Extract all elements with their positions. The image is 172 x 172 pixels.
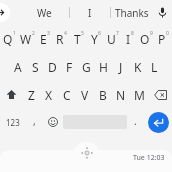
button[interactable]: , — [26, 108, 43, 136]
staticText: X — [45, 87, 53, 103]
staticText: G — [82, 59, 91, 75]
staticText: C — [63, 87, 71, 103]
button[interactable]: We — [19, 0, 69, 25]
staticText: T — [74, 31, 81, 47]
staticText: A — [14, 59, 22, 75]
button[interactable]: P — [155, 25, 172, 53]
button[interactable]: J — [112, 53, 129, 81]
button[interactable]: I — [70, 0, 110, 25]
staticText: Z — [28, 87, 35, 103]
staticText: N — [116, 87, 126, 103]
staticText: 1 — [13, 30, 16, 37]
staticText: D — [48, 59, 57, 75]
staticText: . — [134, 114, 137, 128]
staticText: 7 — [116, 30, 119, 37]
staticText: 123 — [6, 117, 20, 128]
button[interactable]: F — [61, 53, 78, 81]
button[interactable]: I — [121, 25, 138, 53]
button[interactable]: W — [18, 25, 36, 53]
staticText: Thanks — [115, 6, 149, 20]
staticText: E — [40, 31, 47, 47]
button[interactable]: A — [9, 53, 27, 81]
staticText: O — [140, 31, 150, 47]
staticText: P — [158, 31, 166, 47]
button[interactable]: V — [76, 81, 94, 108]
staticText: 8 — [131, 30, 134, 37]
staticText: Y — [91, 31, 98, 47]
staticText: Q — [3, 31, 13, 47]
button[interactable]: R — [53, 25, 70, 53]
staticText: Tue 12:03 — [133, 153, 165, 163]
button[interactable]: K — [129, 53, 146, 81]
staticText: L — [151, 59, 158, 75]
button[interactable]: G — [78, 53, 95, 81]
button[interactable]: Voice input — [152, 0, 172, 25]
staticText: M — [134, 87, 145, 103]
staticText: 4 — [64, 30, 67, 37]
button[interactable]: M — [130, 81, 148, 108]
staticText: , — [33, 114, 36, 128]
button[interactable]: Z — [22, 81, 40, 108]
staticText: F — [66, 59, 73, 75]
staticText: K — [134, 59, 142, 75]
button[interactable]: B — [94, 81, 112, 108]
button[interactable]: Thanks — [111, 0, 152, 25]
button[interactable]: X — [40, 81, 58, 108]
button[interactable]: E — [36, 25, 53, 53]
staticText: 0 — [166, 30, 169, 37]
staticText: 6 — [98, 30, 101, 37]
button[interactable]: Enter — [148, 112, 169, 133]
button[interactable]: T — [70, 25, 87, 53]
staticText: R — [56, 31, 64, 47]
staticText: 2 — [32, 30, 35, 37]
button[interactable]: Emoji — [43, 108, 63, 136]
staticText: I — [126, 31, 131, 47]
button[interactable]: O — [138, 25, 155, 53]
button[interactable]: L — [146, 53, 163, 81]
button[interactable]: . — [127, 108, 144, 136]
staticText: S — [32, 59, 39, 75]
staticText: I — [88, 6, 92, 20]
staticText: W — [20, 31, 32, 47]
staticText: 5 — [81, 30, 84, 37]
button[interactable]: 123 — [0, 108, 26, 136]
button[interactable]: D — [44, 53, 61, 81]
button[interactable]: Navigation — [74, 142, 99, 164]
button[interactable]: U — [104, 25, 121, 53]
staticText: We — [37, 6, 52, 20]
staticText: H — [99, 59, 108, 75]
button[interactable]: N — [112, 81, 130, 108]
staticText: B — [99, 87, 107, 103]
staticText: J — [119, 59, 123, 75]
button[interactable]: More suggestions — [0, 3, 10, 22]
staticText: 9 — [150, 30, 153, 37]
button[interactable]: H — [95, 53, 112, 81]
button[interactable]: Backspace — [148, 81, 172, 108]
button[interactable]: Y — [87, 25, 104, 53]
staticText: V — [81, 87, 89, 103]
staticText: 3 — [47, 30, 50, 37]
button[interactable]: Q — [0, 25, 18, 53]
button[interactable]: C — [58, 81, 76, 108]
button[interactable]: Shift — [0, 81, 22, 108]
staticText: U — [107, 31, 116, 47]
button[interactable]: S — [27, 53, 44, 81]
